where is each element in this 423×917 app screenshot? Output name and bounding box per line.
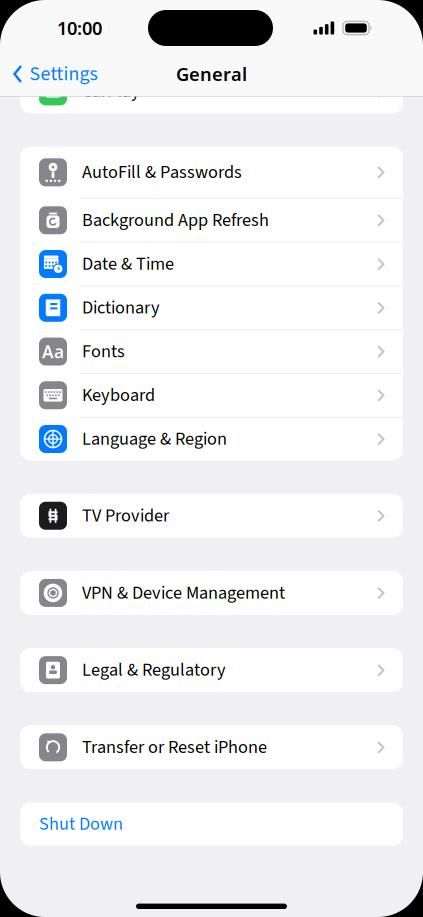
button[interactable]: CarPlay — [20, 69, 403, 113]
staticText: 10:00 — [57, 16, 102, 40]
button[interactable]: Keyboard — [20, 374, 403, 417]
staticText: VPN & Device Management — [82, 580, 285, 606]
staticText: Fonts — [82, 338, 125, 364]
button[interactable]: Transfer or Reset iPhone — [20, 725, 403, 769]
staticText: TV Provider — [82, 503, 169, 529]
staticText: Settings — [29, 60, 97, 88]
staticText: Keyboard — [82, 382, 155, 408]
staticText: Dictionary — [82, 295, 160, 321]
button[interactable]: Background App Refresh — [20, 199, 403, 242]
button[interactable]: Date & Time — [20, 242, 403, 285]
staticText: Transfer or Reset iPhone — [82, 734, 267, 760]
button[interactable]: VPN & Device Management — [20, 571, 403, 615]
staticText: AutoFill & Passwords — [82, 159, 242, 185]
button[interactable]: Dictionary — [20, 286, 403, 329]
staticText: General — [176, 62, 247, 86]
staticText: CarPlay — [82, 78, 140, 104]
button[interactable]: TV Provider — [20, 494, 403, 538]
staticText: Legal & Regulatory — [82, 657, 226, 683]
button[interactable]: Language & Region — [20, 417, 403, 460]
staticText: Date & Time — [82, 251, 174, 277]
staticText: Background App Refresh — [82, 207, 269, 233]
button[interactable]: AutoFill & Passwords — [20, 147, 403, 198]
button[interactable]: Shut Down — [20, 803, 403, 846]
button[interactable]: Aa — [20, 330, 403, 373]
staticText: Language & Region — [82, 426, 227, 452]
staticText: Aa — [42, 340, 64, 363]
button[interactable]: Settings — [0, 54, 97, 94]
staticText: Shut Down — [39, 811, 123, 837]
button[interactable]: Legal & Regulatory — [20, 648, 403, 692]
